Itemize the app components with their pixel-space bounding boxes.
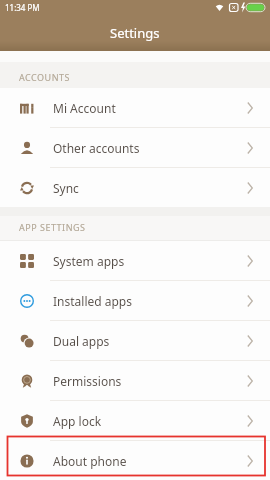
button[interactable]: Mi Account: [0, 88, 270, 127]
staticText: Dual apps: [53, 333, 110, 349]
staticText: Mi Account: [53, 100, 116, 116]
button[interactable]: Dual apps: [0, 321, 270, 360]
staticText: Settings: [110, 24, 160, 42]
staticText: Other accounts: [53, 140, 140, 156]
staticText: 11:34 PM: [5, 2, 40, 13]
staticText: APP SETTINGS: [19, 221, 86, 233]
staticText: Installed apps: [53, 293, 132, 309]
button[interactable]: About phone: [0, 441, 270, 480]
button[interactable]: Permissions: [0, 361, 270, 400]
staticText: ACCOUNTS: [19, 71, 70, 83]
button[interactable]: System apps: [0, 241, 270, 280]
staticText: System apps: [53, 253, 125, 269]
button[interactable]: Sync: [0, 168, 270, 207]
staticText: About phone: [53, 453, 127, 469]
staticText: Sync: [53, 180, 79, 196]
button[interactable]: Installed apps: [0, 281, 270, 320]
button[interactable]: Other accounts: [0, 128, 270, 167]
staticText: App lock: [53, 413, 102, 429]
staticText: Permissions: [53, 373, 122, 389]
button[interactable]: App lock: [0, 401, 270, 440]
